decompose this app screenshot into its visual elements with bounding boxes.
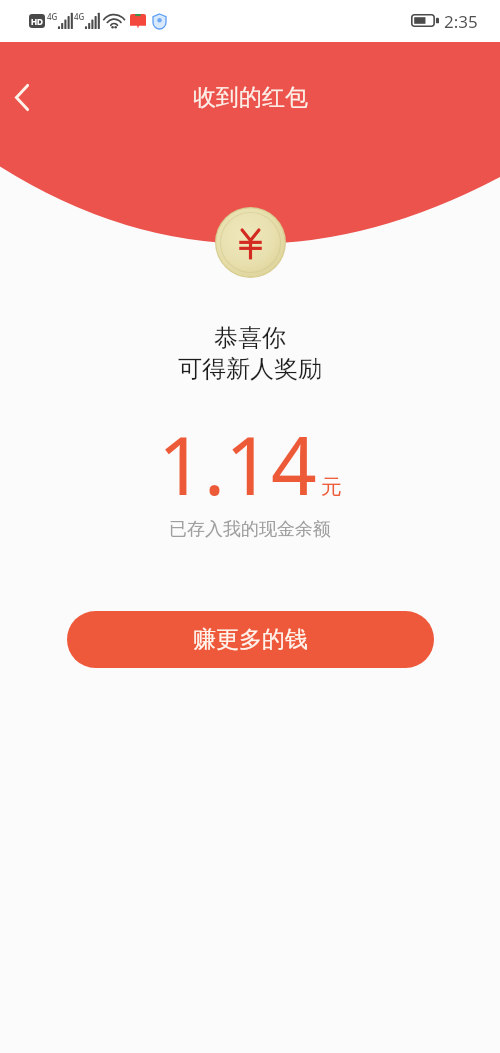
staticText: 可得新人奖励: [178, 354, 322, 384]
staticText: 已存入我的现金余额: [169, 518, 331, 541]
staticText: 1.14: [158, 409, 317, 518]
staticText: 收到的红包: [193, 83, 308, 112]
button[interactable]: 赚更多的钱: [67, 611, 434, 668]
staticText: 赚更多的钱: [193, 625, 308, 654]
staticText: 4G: [47, 11, 58, 22]
staticText: 元: [321, 474, 342, 500]
button[interactable]: Back: [0, 72, 50, 122]
staticText: 恭喜你: [214, 323, 286, 353]
staticText: 2:35: [444, 10, 478, 33]
staticText: 4G: [74, 11, 85, 22]
staticText: HD: [31, 16, 43, 27]
